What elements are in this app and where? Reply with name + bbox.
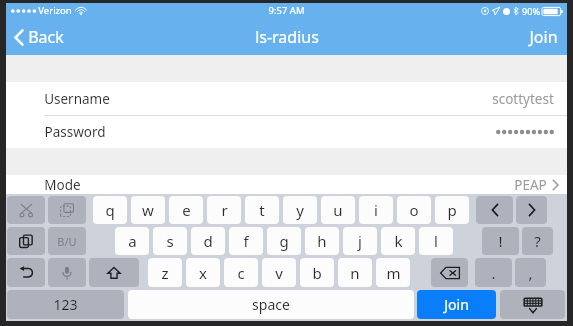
button[interactable]: ? [522,227,553,255]
button[interactable]: g [267,227,301,255]
button[interactable]: Copy [7,227,45,255]
staticText: j [358,231,362,251]
button[interactable]: . [475,258,512,287]
staticText: Join [444,295,469,314]
staticText: l [434,231,438,251]
staticText: . [491,263,496,283]
button[interactable]: k [381,227,415,255]
staticText: ls-radius [255,26,319,48]
staticText: h [317,231,327,251]
staticText: k [394,231,403,251]
button[interactable]: w [131,196,165,224]
button[interactable]: t [245,196,279,224]
button[interactable]: b [300,258,334,287]
button[interactable]: Hide keyboard [500,290,565,319]
button[interactable]: Duplicate [48,196,86,224]
staticText: n [350,263,360,283]
button[interactable]: x [186,258,220,287]
staticText: x [199,263,207,283]
button[interactable]: p [435,196,469,224]
staticText: Password [44,123,106,141]
button[interactable]: o [397,196,431,224]
button[interactable]: space [128,290,414,319]
button[interactable]: l [419,227,453,255]
staticText: z [161,263,169,283]
button[interactable]: B/U [48,227,86,255]
staticText: r [221,200,228,220]
staticText: t [259,200,265,220]
button[interactable]: Join [517,19,567,55]
staticText: ? [534,231,541,251]
button[interactable]: h [305,227,339,255]
staticText: q [105,200,115,220]
staticText: Join [529,26,558,48]
button[interactable]: f [229,227,263,255]
staticText: Username [44,90,110,108]
button[interactable]: c [224,258,258,287]
staticText: space [252,295,290,314]
staticText: g [279,231,289,251]
staticText: s [166,231,174,251]
button[interactable]: Username [6,82,567,115]
staticText: v [275,263,283,283]
staticText: c [237,263,245,283]
staticText: Verizon [38,4,72,17]
button[interactable]: m [376,258,410,287]
button[interactable]: u [321,196,355,224]
button[interactable]: q [93,196,127,224]
button[interactable]: , [515,258,546,287]
staticText: B/U [57,234,77,249]
button[interactable]: Password [6,116,567,148]
staticText: , [528,263,533,283]
staticText: a [128,231,137,251]
button[interactable]: y [283,196,317,224]
button[interactable]: Next field [516,196,547,224]
button[interactable]: Previous field [476,196,513,224]
staticText: f [243,231,249,251]
staticText: m [386,263,401,283]
staticText: e [182,200,191,220]
staticText: i [374,200,378,220]
button[interactable]: a [115,227,149,255]
button[interactable]: Back [6,19,74,55]
staticText: Mode [44,176,81,194]
button[interactable]: ! [482,227,519,255]
button[interactable]: s [153,227,187,255]
button[interactable]: Dictate [48,258,86,287]
button[interactable]: Undo [7,258,45,287]
button[interactable]: v [262,258,296,287]
staticText: u [333,200,343,220]
staticText: p [447,200,457,220]
button[interactable]: d [191,227,225,255]
button[interactable]: Cut [7,196,45,224]
button[interactable]: e [169,196,203,224]
button[interactable]: Mode [6,175,567,194]
button[interactable]: z [148,258,182,287]
button[interactable]: Shift [89,258,139,287]
staticText: 90% [522,5,540,17]
button[interactable]: Backspace [431,258,468,287]
staticText: o [409,200,419,220]
button[interactable]: r [207,196,241,224]
staticText: 9:57 AM [268,4,305,17]
staticText: ! [498,231,503,251]
button[interactable]: n [338,258,372,287]
button[interactable]: 123 [7,290,124,319]
staticText: Back [28,26,64,48]
staticText: b [312,263,322,283]
staticText: PEAP [514,176,547,194]
button[interactable]: j [343,227,377,255]
staticText: d [203,231,213,251]
staticText: w [142,200,154,220]
staticText: y [296,200,304,220]
button[interactable]: i [359,196,393,224]
button[interactable]: Join [417,290,496,319]
staticText: scottytest [492,90,554,108]
staticText: 123 [53,295,78,314]
